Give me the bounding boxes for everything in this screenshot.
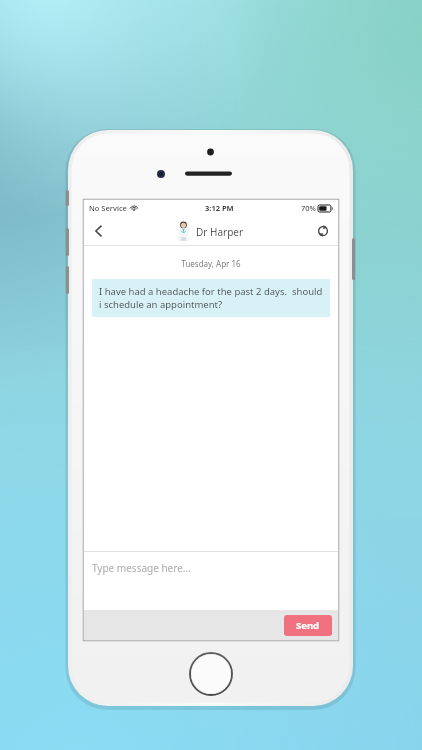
button[interactable]: Dr Harper xyxy=(178,222,244,241)
staticText: I have had a headache for the past 2 day… xyxy=(99,285,323,311)
staticText: Tuesday, Apr 16 xyxy=(84,258,338,269)
button[interactable]: I have had a headache for the past 2 day… xyxy=(92,279,330,317)
button[interactable]: Send xyxy=(284,615,332,636)
button[interactable]: Refresh xyxy=(308,216,338,246)
staticText: No Service xyxy=(89,203,127,213)
staticText: 3:12 PM xyxy=(205,203,234,213)
staticText: Type message here... xyxy=(92,561,191,575)
button[interactable]: Type message here... xyxy=(84,552,338,610)
button[interactable]: Back xyxy=(84,216,114,246)
staticText: 70% xyxy=(301,203,316,213)
staticText: Send xyxy=(296,619,320,632)
staticText: Dr Harper xyxy=(196,225,244,239)
